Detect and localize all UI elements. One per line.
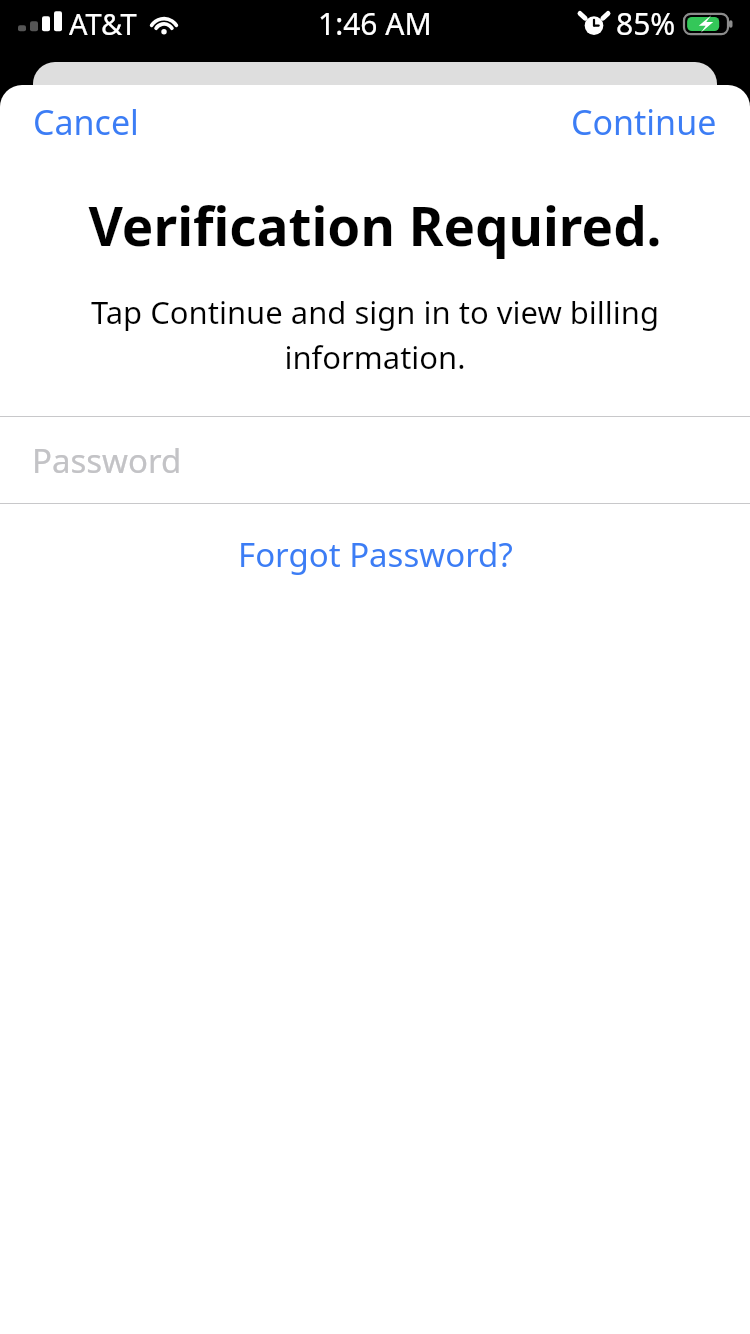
- staticText: 1:46 AM: [318, 3, 432, 44]
- staticText: Continue: [571, 99, 717, 145]
- staticText: AT&T: [69, 4, 137, 43]
- button[interactable]: Password: [0, 417, 750, 503]
- staticText: Forgot Password?: [238, 532, 513, 577]
- button[interactable]: Forgot Password?: [214, 504, 537, 605]
- staticText: Cancel: [33, 99, 139, 145]
- button[interactable]: Cancel: [0, 87, 172, 157]
- staticText: Tap Continue and sign in to view billing…: [60, 291, 690, 378]
- staticText: 85%: [616, 3, 676, 44]
- staticText: Password: [32, 438, 182, 483]
- staticText: Verification Required.: [42, 189, 708, 261]
- button[interactable]: Continue: [538, 87, 750, 157]
